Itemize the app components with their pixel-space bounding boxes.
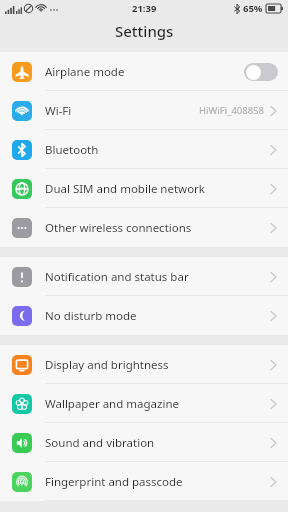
button[interactable]: Bluetooth — [0, 130, 288, 169]
button[interactable]: Display and brightness — [0, 345, 288, 384]
button[interactable]: Wi-Fi — [0, 91, 288, 130]
staticText: Display and brightness — [45, 357, 169, 373]
button[interactable]: Dual SIM and mobile network — [0, 169, 288, 208]
staticText: Other wireless connections — [45, 220, 192, 236]
staticText: Wi-Fi — [45, 103, 72, 119]
staticText: Wallpaper and magazine — [45, 396, 179, 412]
staticText: Bluetooth — [45, 142, 99, 158]
staticText: Fingerprint and passcode — [45, 474, 183, 490]
staticText: Sound and vibration — [45, 435, 155, 451]
button[interactable]: Airplane mode — [0, 52, 288, 91]
button[interactable]: Airplane mode toggle — [244, 63, 278, 81]
button[interactable]: No disturb mode — [0, 296, 288, 335]
button[interactable]: Sound and vibration — [0, 423, 288, 462]
staticText: 21:39 — [132, 2, 157, 15]
staticText: Airplane mode — [45, 64, 125, 80]
button[interactable]: Other wireless connections — [0, 208, 288, 247]
staticText: Notification and status bar — [45, 269, 189, 285]
staticText: HiWiFi_408858 — [199, 104, 264, 117]
button[interactable]: Fingerprint and passcode — [0, 462, 288, 501]
button[interactable]: Wallpaper and magazine — [0, 384, 288, 423]
staticText: Dual SIM and mobile network — [45, 181, 205, 197]
staticText: No disturb mode — [45, 308, 137, 324]
staticText: Settings — [115, 21, 174, 41]
button[interactable]: Notification and status bar — [0, 257, 288, 296]
staticText: 65% — [243, 2, 263, 15]
